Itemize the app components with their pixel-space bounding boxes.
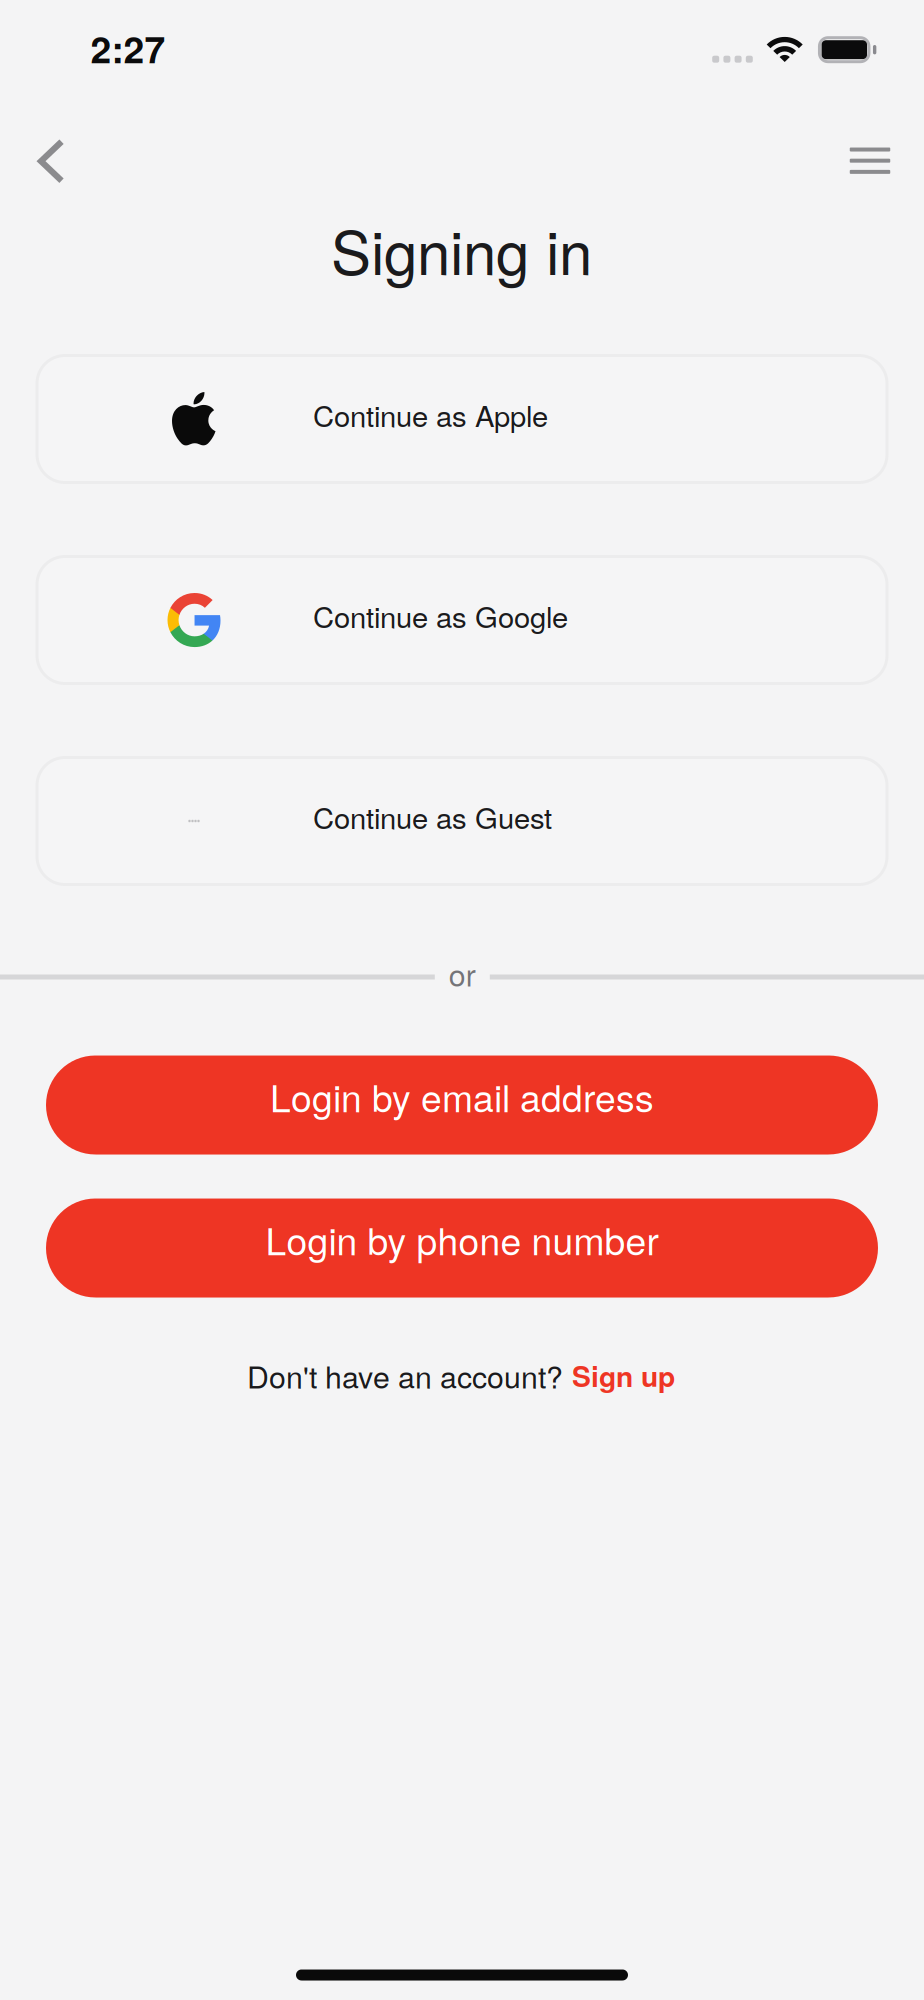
button[interactable]: Login by phone number — [46, 1198, 878, 1297]
button[interactable]: Continue as Google — [37, 556, 887, 683]
button[interactable]: Continue as Apple — [37, 355, 887, 482]
button[interactable]: Back — [11, 121, 91, 201]
staticText: or — [449, 952, 476, 995]
staticText: Login by phone number — [265, 1212, 658, 1266]
button[interactable]: Menu — [830, 121, 910, 201]
staticText: 2:27 — [90, 21, 165, 75]
button[interactable]: Continue as Guest — [37, 757, 887, 884]
button[interactable]: Sign up — [572, 1353, 675, 1397]
staticText: Signing in — [331, 206, 592, 292]
staticText: Sign up — [572, 1355, 675, 1396]
button[interactable]: Login by email address — [46, 1055, 878, 1154]
staticText: Don't have an account? — [247, 1354, 563, 1397]
staticText: Continue as Google — [313, 595, 568, 636]
staticText: Continue as Apple — [313, 394, 548, 435]
staticText: Continue as Guest — [313, 796, 552, 837]
staticText: Login by email address — [270, 1069, 654, 1123]
